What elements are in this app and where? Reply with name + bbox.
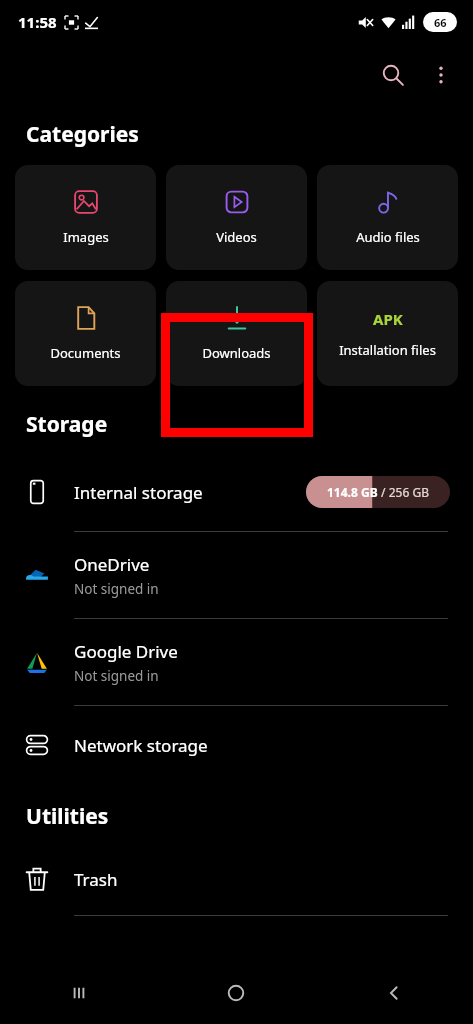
button[interactable]: Internal storage <box>0 453 473 531</box>
button[interactable]: OneDrive <box>0 532 473 618</box>
button[interactable]: Back <box>315 962 473 1024</box>
staticText: Trash <box>74 868 118 891</box>
staticText: / 256 GB <box>378 484 429 500</box>
button[interactable]: APK <box>317 281 458 386</box>
staticText: 66 <box>434 15 447 30</box>
button[interactable]: Images <box>15 165 156 270</box>
button[interactable]: Google Drive <box>0 619 473 705</box>
staticText: Audio files <box>356 228 420 246</box>
button[interactable]: Recents <box>0 962 157 1024</box>
staticText: Images <box>63 228 109 246</box>
button[interactable]: Audio files <box>317 165 458 270</box>
staticText: Network storage <box>74 734 208 757</box>
staticText: Not signed in <box>74 667 159 685</box>
staticText: 114.8 GB <box>327 484 378 500</box>
staticText: Documents <box>50 344 121 362</box>
button[interactable]: Network storage <box>0 706 473 784</box>
button[interactable]: More options <box>417 51 465 99</box>
staticText: Internal storage <box>74 481 203 504</box>
staticText: Google Drive <box>74 640 178 663</box>
button[interactable]: Downloads <box>166 281 307 386</box>
staticText: Utilities <box>26 802 109 831</box>
button[interactable]: Documents <box>15 281 156 386</box>
staticText: APK <box>373 309 403 329</box>
staticText: Downloads <box>202 344 271 362</box>
staticText: Installation files <box>339 341 436 359</box>
button[interactable]: Search <box>369 51 417 99</box>
staticText: Storage <box>26 410 108 439</box>
button[interactable]: Home <box>157 962 315 1024</box>
staticText: OneDrive <box>74 553 150 576</box>
staticText: Not signed in <box>74 580 159 598</box>
staticText: 11:58 <box>18 12 57 32</box>
button[interactable]: Trash <box>0 843 473 915</box>
staticText: Categories <box>26 120 139 149</box>
button[interactable]: Videos <box>166 165 307 270</box>
staticText: Videos <box>216 228 257 246</box>
